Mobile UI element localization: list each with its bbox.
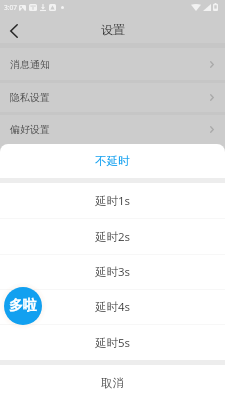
staticText: 不延时 bbox=[95, 154, 130, 168]
button[interactable]: 延时1s bbox=[0, 183, 225, 218]
button[interactable]: 不延时 bbox=[0, 144, 225, 178]
staticText: 取消 bbox=[101, 376, 124, 390]
button[interactable]: 隐私设置 bbox=[0, 83, 225, 112]
staticText: 3:07 bbox=[4, 3, 17, 12]
staticText: 延时2s bbox=[95, 229, 131, 245]
staticText: 消息通知 bbox=[10, 58, 50, 71]
button[interactable]: 取消 bbox=[0, 365, 225, 400]
button[interactable]: 延时4s bbox=[0, 290, 225, 324]
button[interactable]: 偏好设置 bbox=[0, 115, 225, 144]
staticText: 多啦 bbox=[9, 297, 37, 315]
button[interactable]: 消息通知 bbox=[0, 48, 225, 80]
staticText: 偏好设置 bbox=[10, 123, 50, 136]
button[interactable]: Back bbox=[1, 18, 27, 44]
button[interactable]: 多啦 bbox=[4, 287, 42, 325]
staticText: 延时3s bbox=[95, 264, 131, 280]
button[interactable]: 延时3s bbox=[0, 255, 225, 289]
staticText: 延时4s bbox=[95, 299, 131, 315]
staticText: 延时5s bbox=[95, 335, 131, 351]
staticText: 设置 bbox=[101, 22, 125, 37]
staticText: 延时1s bbox=[95, 193, 131, 209]
button[interactable]: 延时2s bbox=[0, 219, 225, 254]
button[interactable]: 延时5s bbox=[0, 325, 225, 360]
staticText: 隐私设置 bbox=[10, 91, 50, 104]
